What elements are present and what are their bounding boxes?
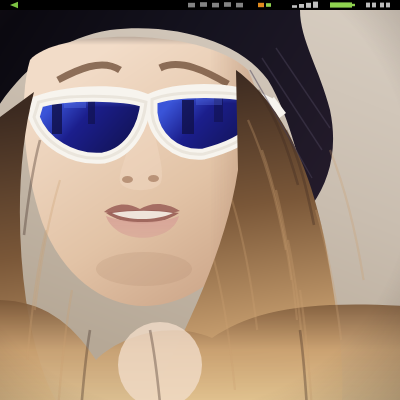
button[interactable]: Photo of woman wearing sunglasses	[0, 0, 400, 400]
